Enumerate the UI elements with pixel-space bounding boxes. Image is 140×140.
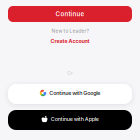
button[interactable]: Continue	[8, 6, 132, 22]
staticText: Continue	[55, 10, 84, 18]
staticText: Continue with Google	[49, 90, 100, 96]
staticText: New to Leader?	[51, 28, 88, 34]
staticText: Create Account	[50, 38, 89, 44]
staticText: Or	[67, 70, 73, 76]
button[interactable]: Create Account	[50, 34, 89, 44]
button[interactable]: Continue with Google	[8, 84, 132, 104]
button[interactable]: Continue with Apple	[8, 110, 132, 130]
staticText: Continue with Apple	[51, 116, 99, 122]
